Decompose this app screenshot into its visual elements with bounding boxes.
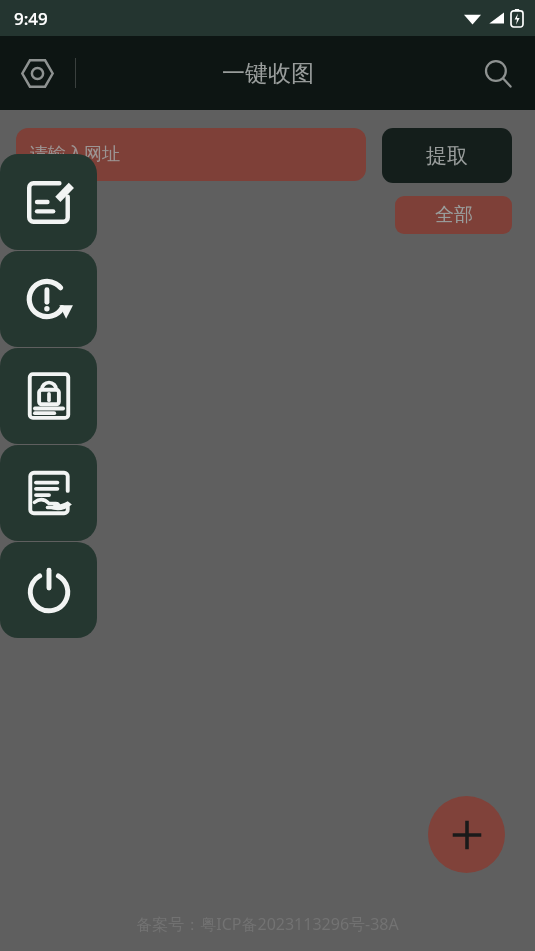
button[interactable]: 全部 <box>395 196 512 234</box>
button[interactable]: Privacy policy <box>0 348 97 444</box>
button[interactable]: Edit note <box>0 154 97 250</box>
staticText: 提取 <box>426 143 468 169</box>
button[interactable]: Power <box>0 542 97 638</box>
button[interactable]: Menu <box>14 50 61 97</box>
button[interactable]: User agreement <box>0 445 97 541</box>
button[interactable]: 请输入网址 <box>16 128 366 181</box>
button[interactable]: 提取 <box>382 128 512 183</box>
button[interactable]: Add <box>428 796 505 873</box>
button[interactable]: Report issue <box>0 251 97 347</box>
button[interactable]: Search <box>474 50 521 97</box>
staticText: 全部 <box>435 203 473 227</box>
staticText: 请输入网址 <box>30 143 120 166</box>
staticText: 备案号：粤ICP备2023113296号-38A <box>136 913 399 935</box>
staticText: 9:49 <box>14 7 48 30</box>
staticText: 一键收图 <box>222 59 314 88</box>
